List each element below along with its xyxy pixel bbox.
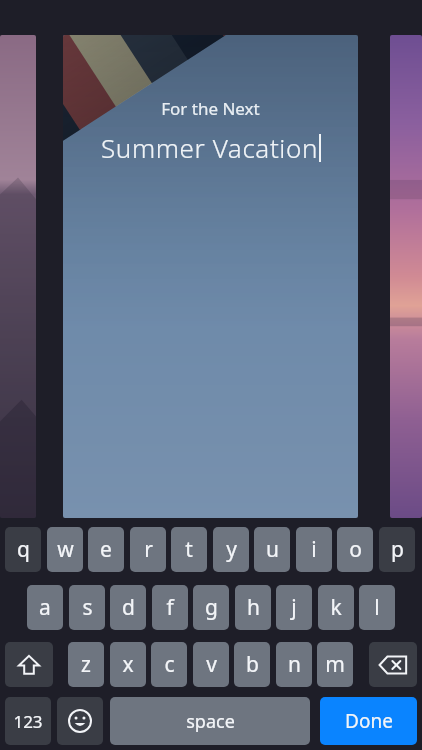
button[interactable]: c: [151, 642, 187, 687]
button[interactable]: n: [276, 642, 312, 687]
staticText: f: [166, 593, 174, 622]
button[interactable]: [0, 35, 36, 518]
button[interactable]: Shift: [5, 642, 53, 687]
button[interactable]: v: [193, 642, 229, 687]
staticText: e: [100, 535, 112, 564]
button[interactable]: 123: [5, 697, 51, 745]
button[interactable]: j: [276, 585, 312, 630]
button[interactable]: h: [235, 585, 271, 630]
button[interactable]: t: [171, 527, 207, 572]
button[interactable]: space: [110, 697, 310, 745]
staticText: o: [349, 535, 362, 564]
button[interactable]: f: [152, 585, 188, 630]
staticText: y: [226, 535, 237, 564]
staticText: n: [288, 650, 301, 679]
button[interactable]: w: [47, 527, 83, 572]
staticText: z: [81, 650, 91, 679]
staticText: v: [206, 650, 217, 679]
staticText: Summer Vacation: [101, 130, 318, 165]
staticText: h: [247, 593, 260, 622]
button[interactable]: Backspace: [369, 642, 417, 687]
button[interactable]: d: [110, 585, 146, 630]
button[interactable]: m: [317, 642, 353, 687]
button[interactable]: Emoji: [57, 697, 103, 745]
staticText: k: [330, 593, 342, 622]
staticText: c: [164, 650, 175, 679]
staticText: x: [122, 650, 134, 679]
button[interactable]: o: [337, 527, 373, 572]
button[interactable]: r: [130, 527, 166, 572]
staticText: u: [266, 535, 279, 564]
staticText: 123: [13, 710, 43, 733]
staticText: a: [39, 593, 51, 622]
staticText: Done: [345, 708, 393, 734]
staticText: l: [374, 593, 380, 622]
staticText: b: [246, 650, 259, 679]
staticText: t: [185, 535, 193, 564]
button[interactable]: b: [234, 642, 270, 687]
button[interactable]: x: [110, 642, 146, 687]
button[interactable]: y: [213, 527, 249, 572]
button[interactable]: e: [88, 527, 124, 572]
staticText: m: [325, 650, 345, 679]
button[interactable]: k: [318, 585, 354, 630]
button[interactable]: z: [68, 642, 104, 687]
button[interactable]: [390, 35, 422, 518]
button[interactable]: a: [27, 585, 63, 630]
button[interactable]: g: [193, 585, 229, 630]
staticText: space: [186, 709, 235, 734]
staticText: d: [122, 593, 135, 622]
staticText: q: [17, 535, 30, 564]
button[interactable]: For the Next: [63, 35, 358, 518]
staticText: i: [311, 535, 317, 564]
button[interactable]: q: [5, 527, 41, 572]
button[interactable]: p: [379, 527, 415, 572]
button[interactable]: s: [69, 585, 105, 630]
staticText: s: [82, 593, 93, 622]
staticText: w: [57, 535, 74, 564]
staticText: r: [144, 535, 153, 564]
button[interactable]: i: [296, 527, 332, 572]
staticText: j: [291, 593, 297, 622]
staticText: p: [391, 535, 404, 564]
staticText: For the Next: [161, 97, 260, 120]
button[interactable]: Done: [320, 697, 417, 745]
button[interactable]: u: [254, 527, 290, 572]
button[interactable]: l: [359, 585, 395, 630]
staticText: g: [205, 593, 218, 622]
